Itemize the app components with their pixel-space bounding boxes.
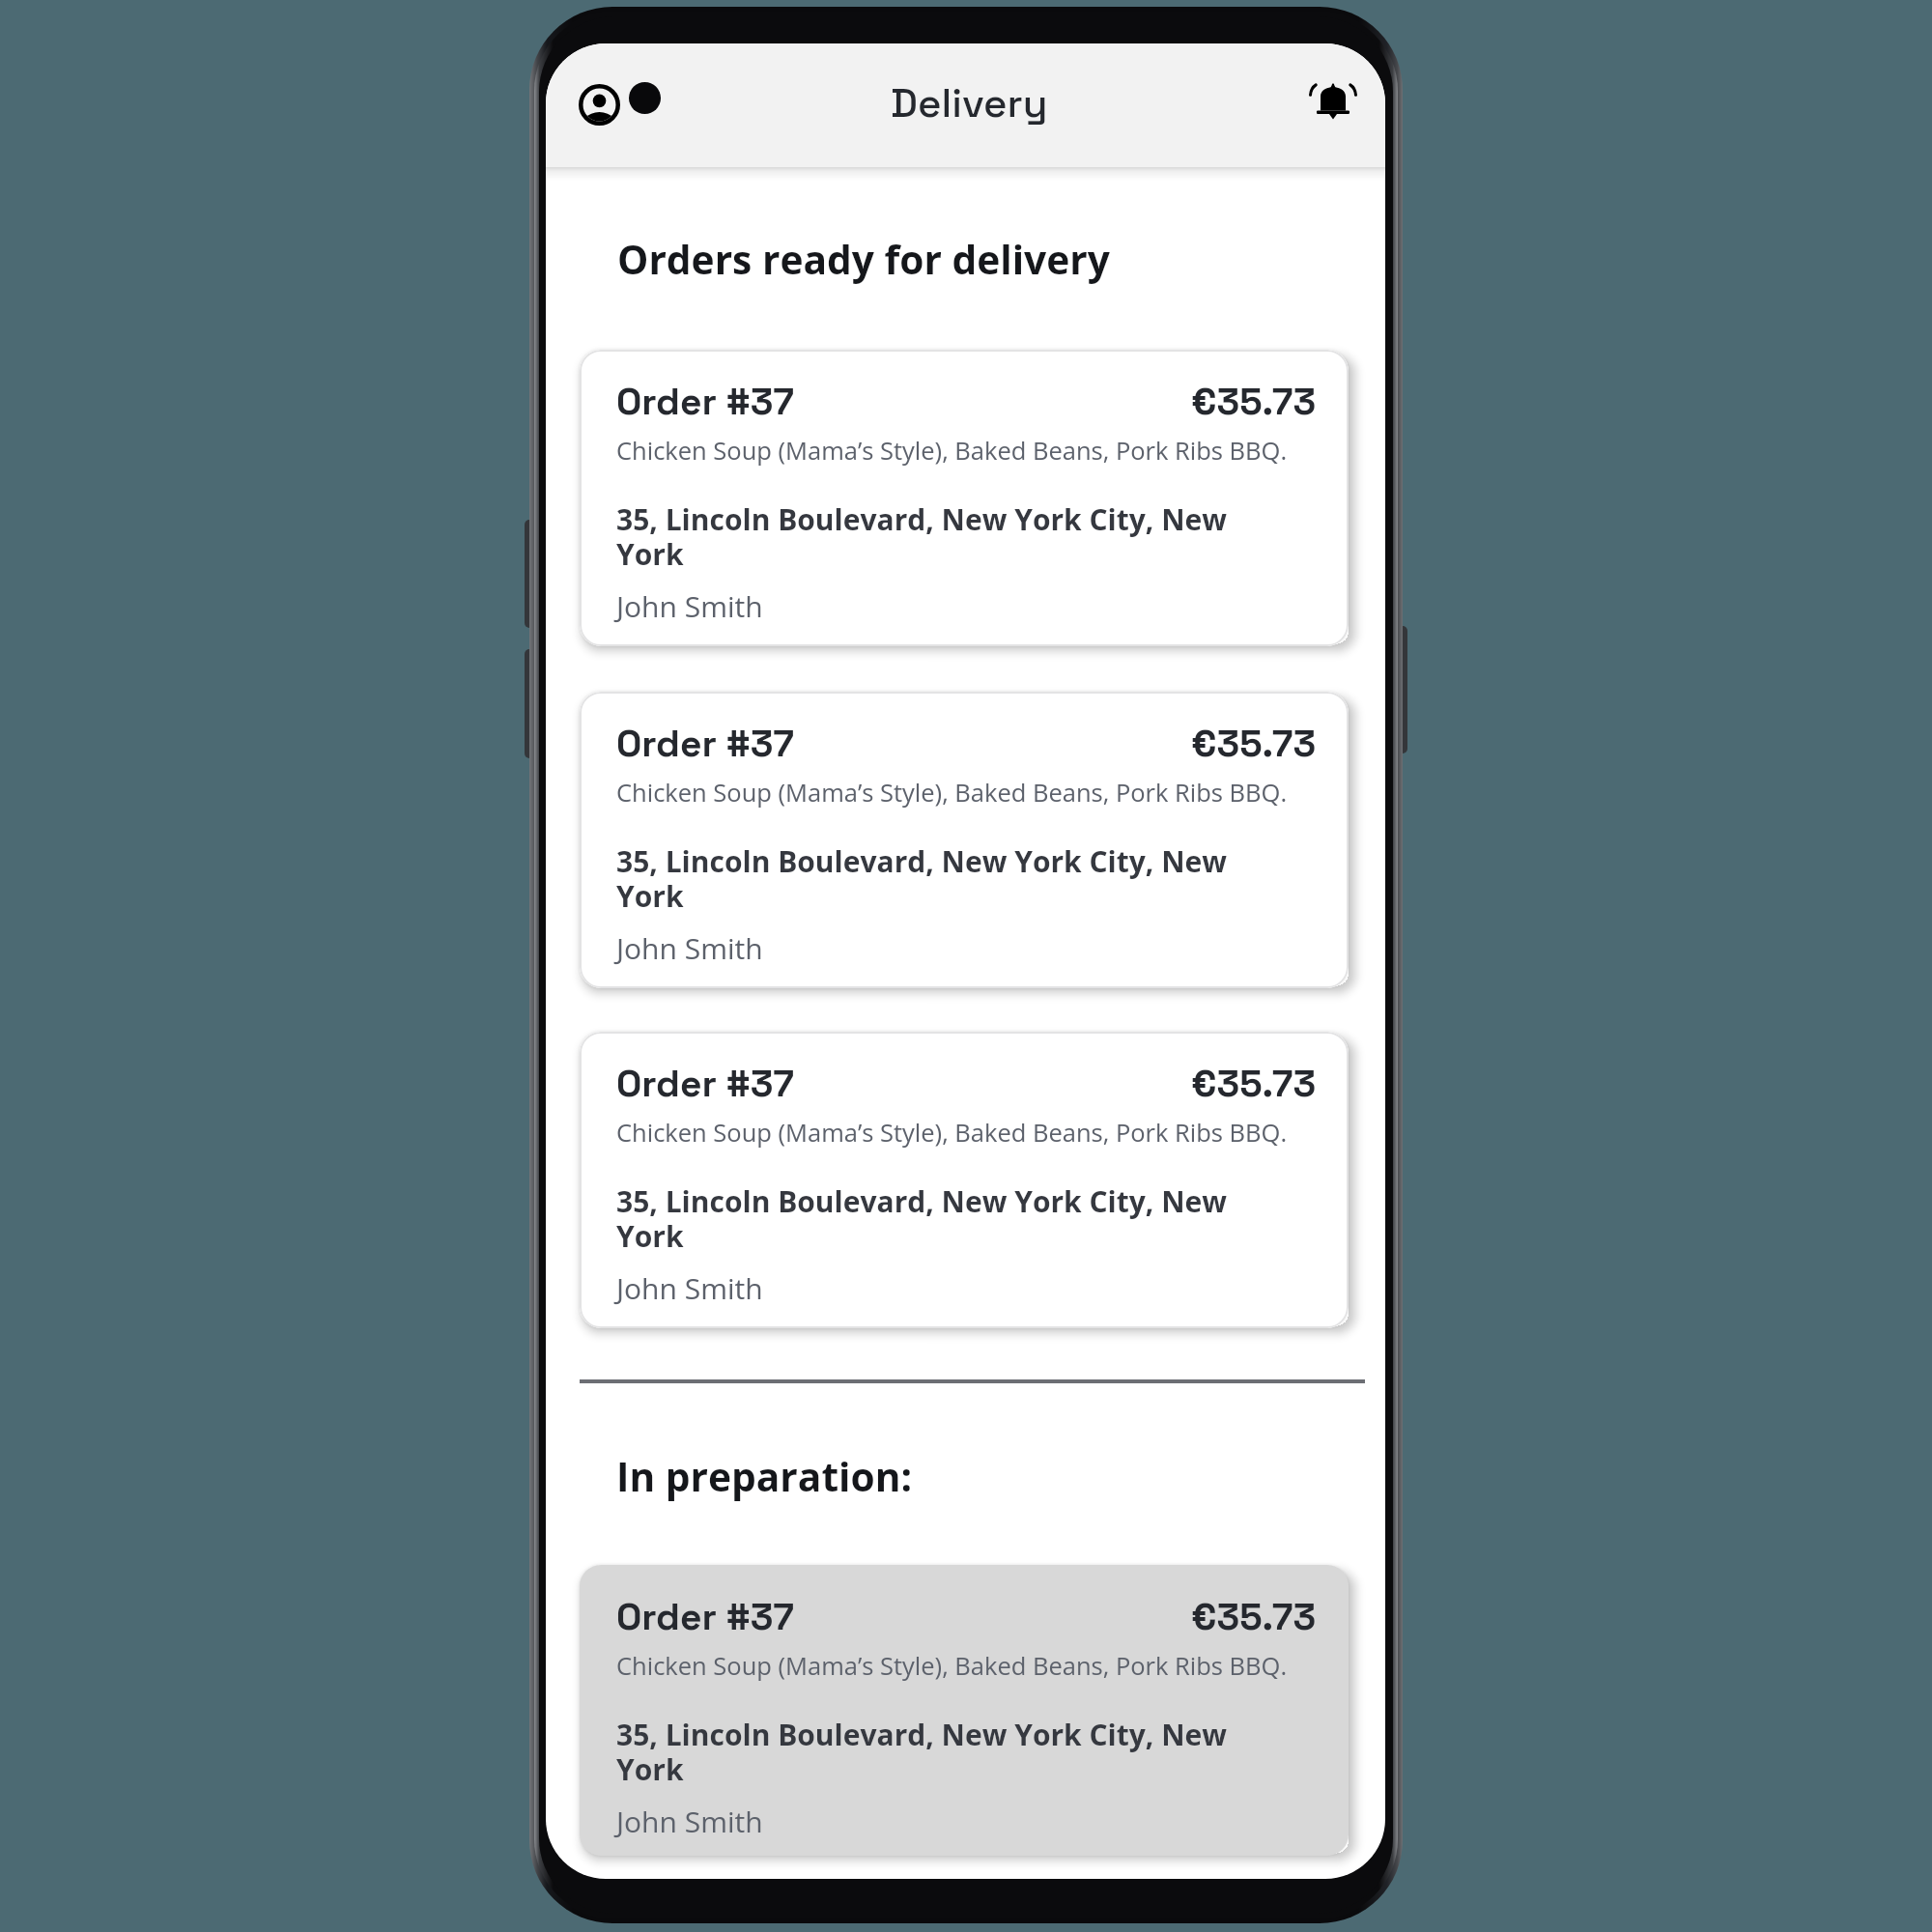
staticText: 35, Lincoln Boulevard, New York City, Ne… [616, 1185, 1254, 1255]
staticText: €35.73 [1191, 378, 1317, 426]
staticText: John Smith [616, 586, 763, 626]
staticText: Delivery [891, 77, 1048, 129]
staticText: €35.73 [1191, 720, 1317, 768]
staticText: John Smith [616, 1268, 763, 1308]
staticText: Chicken Soup (Mama’s Style), Baked Beans… [616, 1116, 1288, 1150]
staticText: Chicken Soup (Mama’s Style), Baked Beans… [616, 1649, 1288, 1683]
button[interactable]: Order #37 [580, 350, 1349, 646]
staticText: €35.73 [1191, 1060, 1317, 1108]
button[interactable]: Notifications [1298, 68, 1368, 137]
staticText: 35, Lincoln Boulevard, New York City, Ne… [616, 1719, 1254, 1788]
staticText: Order #37 [616, 378, 794, 426]
staticText: €35.73 [1191, 1593, 1317, 1641]
staticText: Order #37 [616, 720, 794, 768]
staticText: Orders ready for delivery [617, 232, 1110, 285]
staticText: 35, Lincoln Boulevard, New York City, Ne… [616, 503, 1254, 573]
staticText: John Smith [616, 928, 763, 968]
staticText: Order #37 [616, 1593, 794, 1641]
button[interactable]: Order #37 [580, 1565, 1349, 1856]
button[interactable]: Account [564, 70, 634, 139]
staticText: 35, Lincoln Boulevard, New York City, Ne… [616, 845, 1254, 915]
button[interactable]: Order #37 [580, 1032, 1349, 1328]
staticText: In preparation: [616, 1449, 913, 1502]
staticText: Chicken Soup (Mama’s Style), Baked Beans… [616, 434, 1288, 468]
staticText: Chicken Soup (Mama’s Style), Baked Beans… [616, 776, 1288, 810]
staticText: John Smith [616, 1802, 763, 1841]
button[interactable]: Order #37 [580, 692, 1349, 988]
staticText: Order #37 [616, 1060, 794, 1108]
